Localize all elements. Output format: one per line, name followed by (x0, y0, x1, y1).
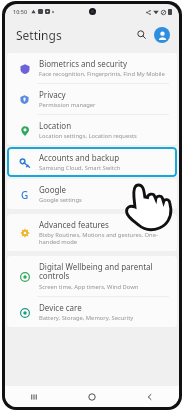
button[interactable]: Digital Wellbeing and parental controls (7, 256, 177, 296)
staticText: Face recognition, Fingerprints, Find My … (39, 70, 165, 78)
button[interactable]: G (7, 179, 177, 209)
staticText: Samsung Cloud, Smart Switch (39, 164, 121, 172)
staticText: Digital Wellbeing and parental controls (39, 261, 169, 282)
button[interactable]: Biometrics and security (7, 53, 177, 83)
button[interactable]: Back (121, 386, 179, 407)
staticText: Privacy (39, 89, 66, 100)
staticText: Google (39, 184, 66, 195)
button[interactable]: Account (154, 27, 170, 43)
staticText: G (21, 188, 29, 202)
button[interactable]: Home (63, 386, 121, 407)
staticText: 10:50 (13, 8, 28, 15)
staticText: Biometrics and security (39, 58, 127, 69)
staticText: Accounts and backup (39, 152, 120, 163)
staticText: Screen time, App timers, Wind Down (39, 283, 139, 291)
button[interactable]: Search (133, 26, 150, 43)
staticText: Battery, Storage, Memory, Security (39, 314, 134, 322)
button[interactable]: Device care (7, 297, 177, 327)
staticText: Advanced features (39, 219, 109, 230)
staticText: Google settings (39, 196, 82, 204)
staticText: Bixby Routines, Motions and gestures, On… (39, 231, 169, 246)
button[interactable]: Advanced features (7, 214, 177, 251)
button[interactable]: Accounts and backup (7, 147, 177, 177)
staticText: Device care (39, 302, 82, 313)
staticText: Location settings, Location requests (39, 132, 137, 140)
staticText: Location (39, 120, 72, 131)
staticText: Settings (16, 27, 62, 43)
button[interactable]: Location (7, 115, 177, 145)
button[interactable]: Privacy (7, 84, 177, 114)
staticText: Permission manager (39, 101, 96, 109)
button[interactable]: Recents (5, 386, 63, 407)
